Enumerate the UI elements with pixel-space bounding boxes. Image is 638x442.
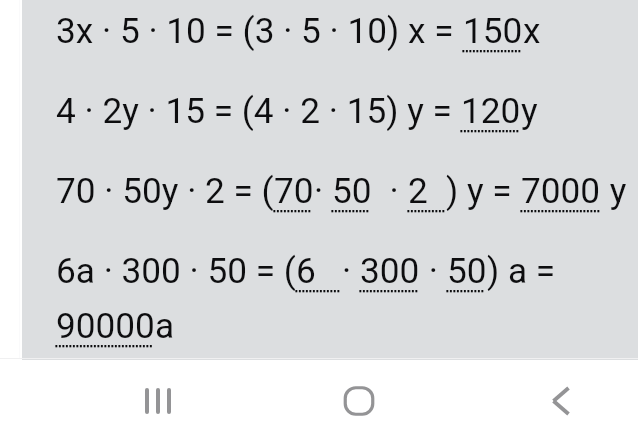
button[interactable]: Recent apps: [116, 378, 196, 424]
staticText: 50: [332, 170, 372, 211]
staticText: 50: [447, 250, 487, 291]
staticText: ) y =: [446, 170, 521, 211]
staticText: y: [521, 90, 538, 131]
staticText: ·: [314, 170, 332, 211]
button[interactable]: 70: [274, 170, 314, 211]
staticText: 120: [461, 90, 521, 131]
staticText: ·: [420, 250, 447, 291]
staticText: a: [155, 305, 175, 346]
staticText: ·: [372, 170, 408, 211]
button[interactable]: 2: [408, 170, 446, 211]
staticText: 70 · 50y · 2 = (: [56, 170, 274, 211]
button[interactable]: 120: [461, 90, 521, 131]
staticText: 70: [274, 170, 314, 211]
staticText: 2: [408, 170, 446, 211]
button[interactable]: 90000: [56, 305, 155, 346]
staticText: 4 · 2y · 15 = (4 · 2 · 15) y =: [56, 90, 461, 131]
staticText: 300: [360, 250, 420, 291]
button[interactable]: 300: [360, 250, 420, 291]
button[interactable]: 50: [447, 250, 487, 291]
button[interactable]: 150: [463, 10, 523, 51]
staticText: 150: [463, 10, 523, 51]
staticText: 6a · 300 · 50 = (: [56, 250, 296, 291]
staticText: ·: [342, 250, 360, 291]
button[interactable]: Back: [520, 378, 600, 424]
staticText: 3x · 5 · 10 = (3 · 5 · 10) x =: [56, 10, 463, 51]
button[interactable]: 50: [332, 170, 372, 211]
staticText: 6: [296, 250, 342, 291]
button[interactable]: 6: [296, 250, 342, 291]
staticText: y: [601, 170, 627, 211]
staticText: x: [523, 10, 541, 51]
staticText: ) a =: [487, 250, 564, 291]
staticText: 90000: [56, 305, 155, 346]
button[interactable]: Home: [319, 378, 399, 424]
button[interactable]: 7000: [521, 170, 601, 211]
staticText: 7000: [521, 170, 601, 211]
